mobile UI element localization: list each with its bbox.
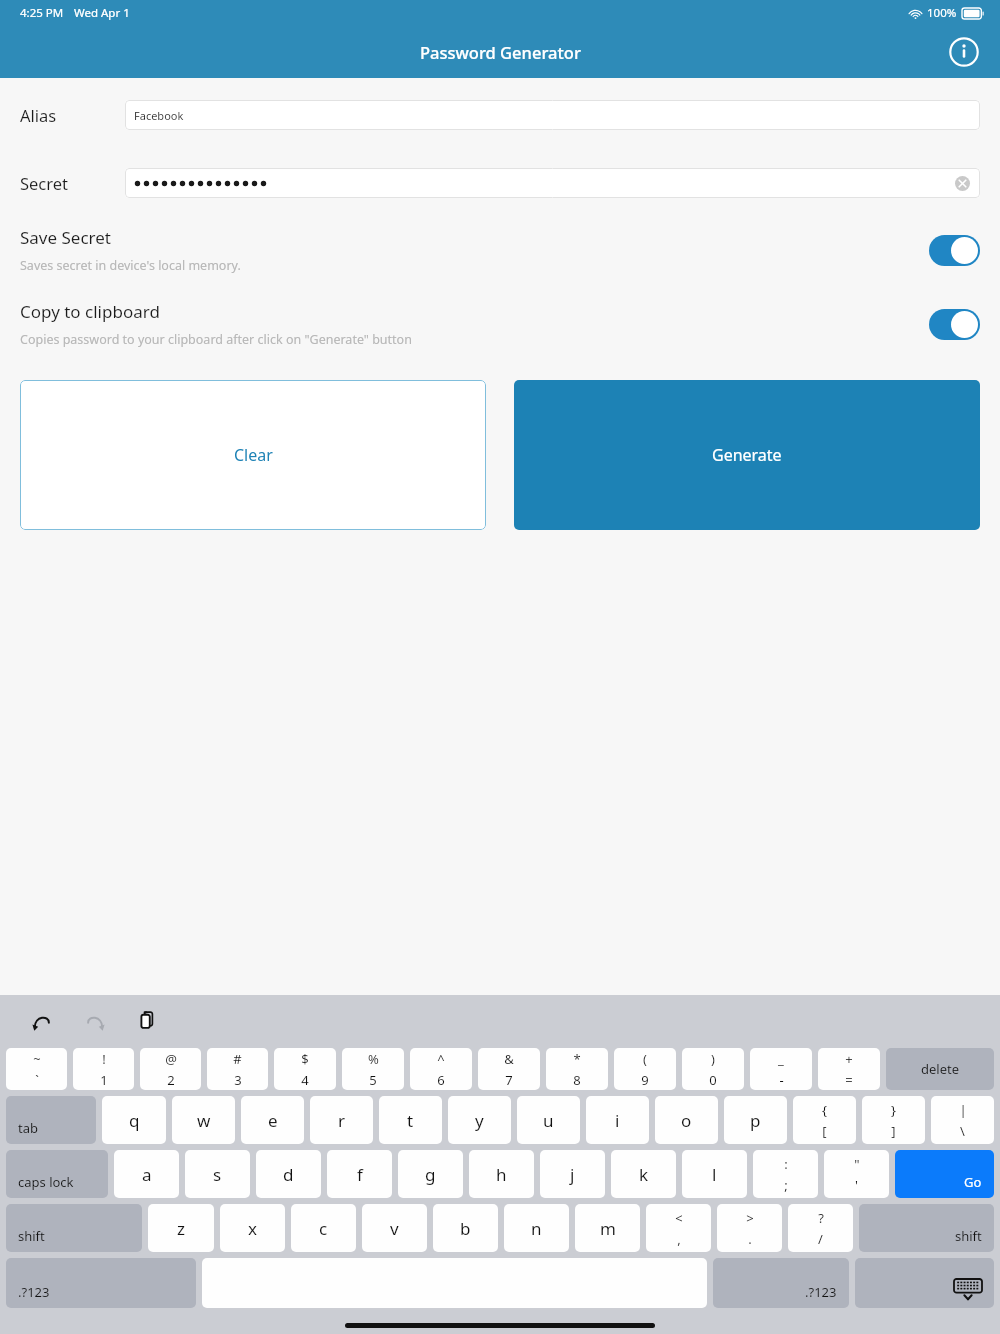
button[interactable]: n	[504, 1204, 569, 1252]
button[interactable]: Clear	[20, 380, 486, 530]
button[interactable]: Paste	[128, 1000, 168, 1040]
staticText: 4:25 PM	[20, 5, 64, 21]
button[interactable]: Info	[944, 32, 984, 72]
staticText: 9	[641, 1071, 649, 1089]
button[interactable]: c	[291, 1204, 356, 1252]
button[interactable]: j	[540, 1150, 605, 1198]
button[interactable]: $	[274, 1048, 336, 1090]
staticText: x	[248, 1217, 257, 1240]
button[interactable]: Copy to clipboard toggle	[929, 309, 980, 340]
button[interactable]: Save Secret	[20, 226, 980, 274]
staticText: #	[233, 1050, 242, 1068]
staticText: y	[475, 1109, 484, 1132]
staticText: :	[784, 1155, 788, 1173]
button[interactable]: Undo	[22, 1000, 62, 1040]
button[interactable]: o	[655, 1096, 718, 1144]
button[interactable]: }	[862, 1096, 925, 1144]
button[interactable]: s	[185, 1150, 250, 1198]
button[interactable]: m	[575, 1204, 640, 1252]
button[interactable]: Facebook	[125, 100, 980, 130]
button[interactable]: a	[114, 1150, 179, 1198]
button[interactable]: shift	[6, 1204, 142, 1252]
button[interactable]: *	[546, 1048, 608, 1090]
button[interactable]: e	[241, 1096, 304, 1144]
staticText: shift	[18, 1227, 45, 1245]
button[interactable]: &	[478, 1048, 540, 1090]
button[interactable]: >	[717, 1204, 782, 1252]
button[interactable]: v	[362, 1204, 427, 1252]
staticText: ?	[818, 1209, 824, 1227]
staticText: c	[319, 1217, 328, 1240]
button[interactable]: h	[469, 1150, 534, 1198]
button[interactable]: Hide keyboard	[855, 1258, 994, 1308]
staticText: Go	[964, 1173, 982, 1191]
button[interactable]: i	[586, 1096, 649, 1144]
button[interactable]: ~	[6, 1048, 67, 1090]
staticText: 100%	[927, 5, 957, 21]
button[interactable]: ?	[788, 1204, 853, 1252]
button[interactable]: q	[102, 1096, 166, 1144]
staticText: 8	[573, 1071, 581, 1089]
staticText: <	[675, 1209, 683, 1227]
button[interactable]: g	[398, 1150, 463, 1198]
staticText: Copies password to your clipboard after …	[20, 331, 412, 348]
button[interactable]: w	[172, 1096, 235, 1144]
button[interactable]: l	[682, 1150, 747, 1198]
button[interactable]: z	[148, 1204, 214, 1252]
button[interactable]: "	[824, 1150, 889, 1198]
button[interactable]: #	[207, 1048, 268, 1090]
staticText: v	[390, 1217, 399, 1240]
staticText: l	[712, 1163, 717, 1186]
button[interactable]: :	[753, 1150, 818, 1198]
button[interactable]: b	[433, 1204, 498, 1252]
button[interactable]: t	[379, 1096, 442, 1144]
button[interactable]: {	[793, 1096, 856, 1144]
button[interactable]: .?123	[6, 1258, 196, 1308]
button[interactable]: Clear secret	[125, 168, 980, 198]
staticText: o	[681, 1109, 692, 1132]
button[interactable]: +	[818, 1048, 880, 1090]
staticText: Wed Apr 1	[74, 5, 130, 21]
staticText: 3	[234, 1071, 242, 1089]
button[interactable]: @	[140, 1048, 201, 1090]
button[interactable]: Clear secret	[953, 174, 971, 192]
staticText: Copy to clipboard	[20, 300, 160, 323]
button[interactable]: tab	[6, 1096, 96, 1144]
staticText: `	[35, 1071, 39, 1089]
button[interactable]: (	[614, 1048, 676, 1090]
staticText: r	[338, 1109, 346, 1132]
button[interactable]: Go	[895, 1150, 994, 1198]
button[interactable]: .?123	[713, 1258, 849, 1308]
button[interactable]: delete	[886, 1048, 994, 1090]
button[interactable]: r	[310, 1096, 373, 1144]
button[interactable]: y	[448, 1096, 511, 1144]
button[interactable]: x	[220, 1204, 285, 1252]
staticText: a	[142, 1163, 152, 1186]
button[interactable]: <	[646, 1204, 711, 1252]
button[interactable]: p	[724, 1096, 787, 1144]
staticText: @	[165, 1050, 177, 1068]
staticText: !	[102, 1050, 106, 1068]
button[interactable]: shift	[859, 1204, 994, 1252]
button[interactable]: )	[682, 1048, 744, 1090]
button[interactable]: Save Secret toggle	[929, 235, 980, 266]
button[interactable]: ^	[410, 1048, 472, 1090]
staticText: Password Generator	[420, 41, 581, 63]
staticText: {	[822, 1101, 827, 1119]
button[interactable]: _	[750, 1048, 812, 1090]
button[interactable]: d	[256, 1150, 321, 1198]
button[interactable]: k	[611, 1150, 676, 1198]
button[interactable]: Copy to clipboard	[20, 300, 980, 348]
button[interactable]: caps lock	[6, 1150, 108, 1198]
button[interactable]: Redo	[75, 1000, 115, 1040]
button[interactable]: Generate	[514, 380, 980, 530]
button[interactable]: f	[327, 1150, 392, 1198]
button[interactable]: u	[517, 1096, 580, 1144]
button[interactable]: |	[931, 1096, 994, 1144]
staticText: 4	[301, 1071, 309, 1089]
staticText: .?123	[805, 1283, 837, 1301]
button[interactable]: %	[342, 1048, 404, 1090]
button[interactable]: !	[73, 1048, 134, 1090]
staticText: '	[855, 1176, 858, 1194]
